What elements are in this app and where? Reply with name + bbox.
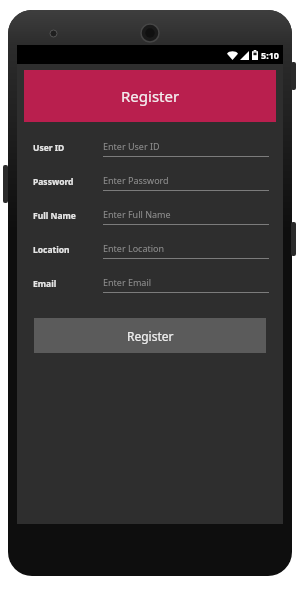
button[interactable]: Enter User ID (103, 140, 269, 157)
staticText: Enter Location (103, 242, 165, 254)
button[interactable]: Enter Location (103, 242, 269, 259)
staticText: Enter User ID (103, 140, 160, 152)
staticText: Full Name (33, 210, 76, 222)
button[interactable]: Enter Password (103, 174, 269, 191)
staticText: Enter Email (103, 276, 152, 288)
button[interactable]: Register (34, 318, 266, 353)
staticText: Password (33, 176, 74, 188)
button[interactable]: Enter Email (103, 276, 269, 293)
staticText: Email (33, 278, 57, 290)
button[interactable]: Enter Full Name (103, 208, 269, 225)
staticText: Enter Full Name (103, 208, 171, 220)
staticText: Enter Password (103, 174, 169, 186)
staticText: Register (121, 86, 180, 106)
staticText: Register (127, 328, 174, 344)
staticText: Location (33, 244, 70, 256)
staticText: 5:10 (261, 49, 279, 61)
staticText: User ID (33, 142, 65, 154)
button[interactable]: Register (24, 70, 276, 122)
